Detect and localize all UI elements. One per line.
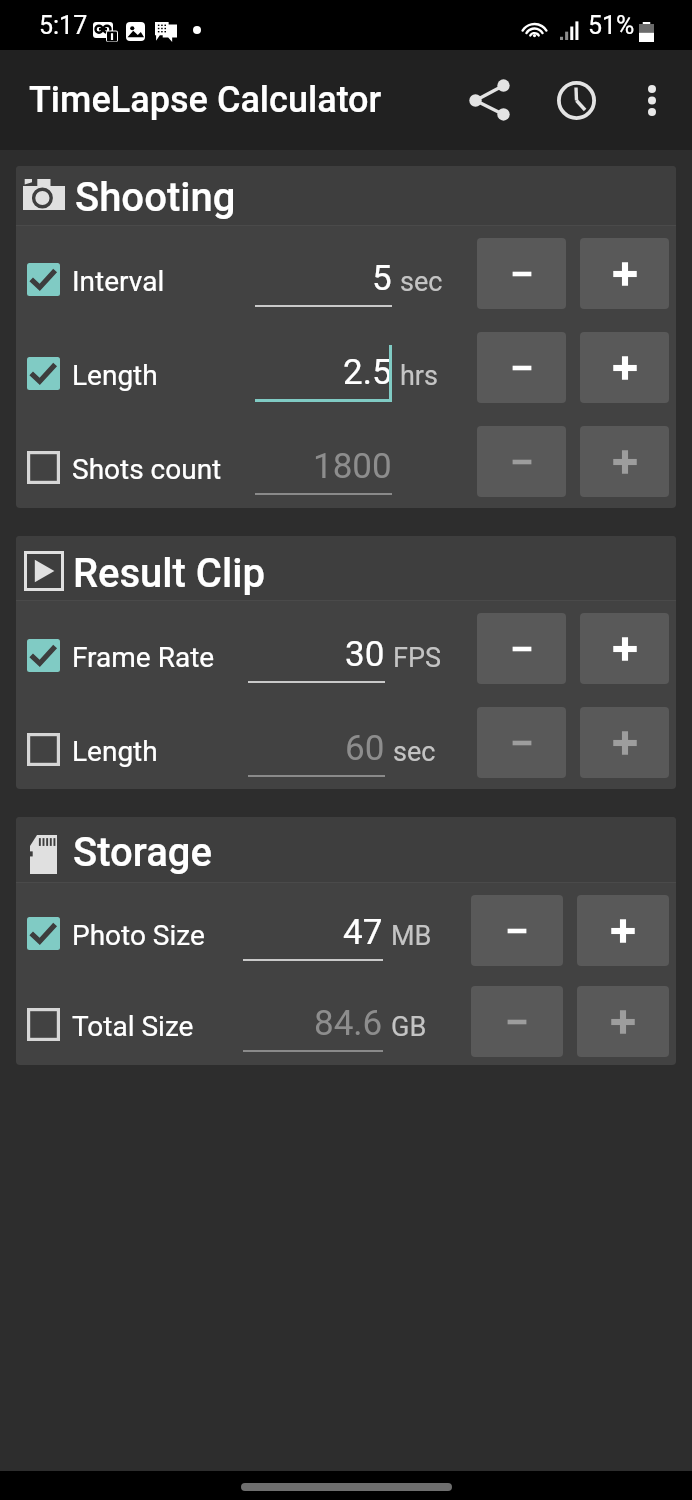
staticText: MB (391, 920, 432, 952)
staticText: Length (72, 735, 158, 768)
button[interactable]: 2.5 (255, 320, 392, 414)
staticText: 30 (345, 634, 385, 675)
button[interactable]: 30 (248, 601, 385, 695)
button[interactable]: 60 (248, 695, 385, 789)
button[interactable]: Decrease (471, 986, 563, 1057)
button[interactable]: Decrease (477, 332, 566, 403)
staticText: 60 (345, 728, 385, 769)
staticText: Storage (73, 829, 212, 876)
button[interactable]: 84.6 (243, 974, 383, 1065)
button[interactable]: Share (453, 64, 525, 136)
button[interactable]: Photo Size (16, 905, 256, 961)
staticText: TimeLapse Calculator (29, 79, 382, 121)
staticText: Result Clip (73, 550, 265, 597)
button[interactable]: Decrease (477, 613, 566, 684)
staticText: 1800 (313, 446, 392, 487)
button[interactable]: Increase (580, 613, 669, 684)
button[interactable]: More options (616, 64, 688, 136)
staticText: Shooting (75, 174, 236, 221)
staticText: 47 (343, 912, 383, 953)
staticText: 5:17 (39, 11, 88, 40)
button[interactable]: Increase (580, 332, 669, 403)
button[interactable]: Decrease (477, 238, 566, 309)
button[interactable]: Shots count (16, 439, 256, 495)
button[interactable]: Length (16, 345, 256, 401)
staticText: GB (391, 1011, 427, 1043)
button[interactable]: Increase (580, 426, 669, 497)
staticText: Photo Size (72, 919, 205, 952)
button[interactable]: Decrease (477, 426, 566, 497)
button[interactable]: 1800 (255, 414, 392, 508)
staticText: 2.5 (343, 352, 392, 393)
staticText: Interval (72, 265, 165, 298)
staticText: sec (393, 736, 436, 768)
staticText: Frame Rate (72, 641, 215, 674)
button[interactable]: Decrease (471, 895, 563, 966)
button[interactable]: Increase (577, 895, 669, 966)
button[interactable]: Frame Rate (16, 627, 256, 683)
staticText: 84.6 (314, 1003, 383, 1044)
staticText: Total Size (72, 1010, 194, 1043)
button[interactable]: 5 (255, 226, 392, 320)
button[interactable]: Length (16, 721, 256, 777)
staticText: Length (72, 359, 158, 392)
staticText: hrs (400, 360, 438, 392)
button[interactable]: Increase (580, 707, 669, 778)
staticText: sec (400, 266, 443, 298)
staticText: FPS (393, 642, 441, 674)
button[interactable]: History (540, 64, 612, 136)
button[interactable]: Decrease (477, 707, 566, 778)
staticText: Shots count (72, 453, 222, 486)
staticText: 5 (372, 258, 392, 299)
staticText: 51% (588, 11, 635, 40)
button[interactable]: Increase (577, 986, 669, 1057)
button[interactable]: Increase (580, 238, 669, 309)
button[interactable]: 47 (243, 883, 383, 974)
button[interactable]: Total Size (16, 996, 256, 1052)
button[interactable]: Interval (16, 251, 256, 307)
